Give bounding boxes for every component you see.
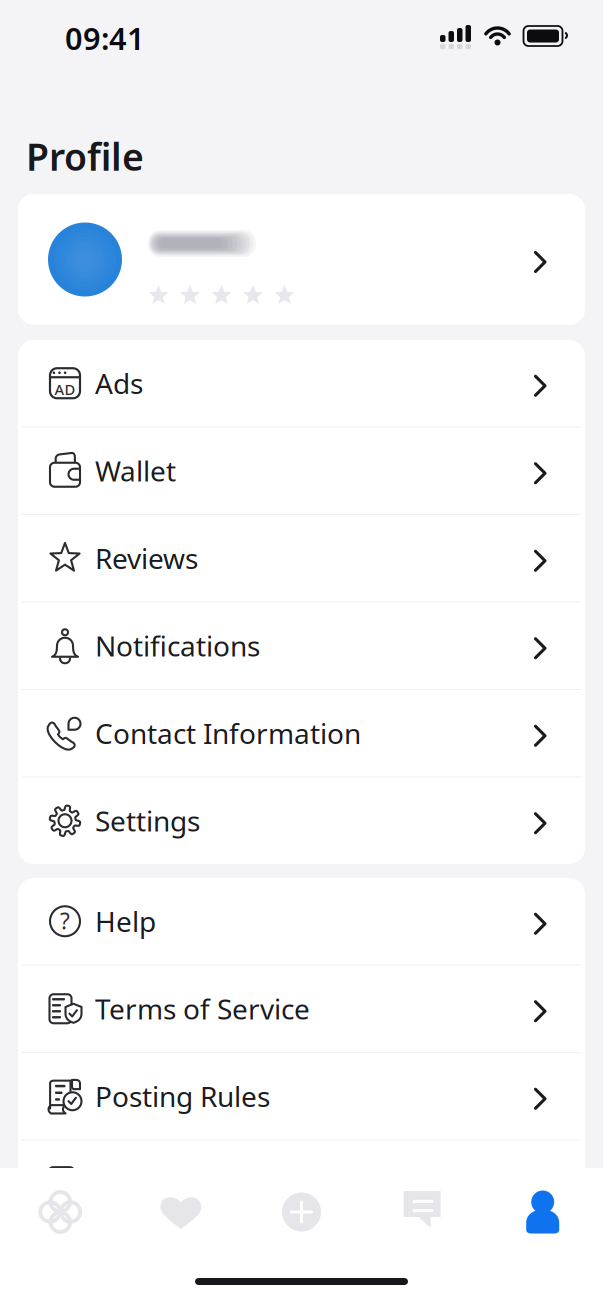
staticText: ? bbox=[60, 906, 70, 936]
staticText: Ads bbox=[95, 365, 143, 402]
button[interactable]: Posting Rules bbox=[18, 1053, 585, 1139]
button[interactable]: AD bbox=[18, 340, 585, 426]
button[interactable]: ? bbox=[18, 878, 585, 964]
staticText: Wallet bbox=[95, 452, 176, 489]
staticText: Posting Rules bbox=[95, 1078, 270, 1115]
button[interactable]: Wallet bbox=[18, 427, 585, 514]
button[interactable]: Favorites bbox=[121, 1168, 241, 1256]
button[interactable]: Privacy Policy bbox=[18, 1140, 585, 1227]
button[interactable]: Home bbox=[0, 1168, 121, 1256]
button[interactable]: Messages bbox=[362, 1168, 482, 1256]
button[interactable]: Create bbox=[241, 1168, 362, 1256]
staticText: AD bbox=[54, 379, 75, 399]
button[interactable]: Terms of Service bbox=[18, 965, 585, 1052]
button[interactable]: Settings bbox=[18, 777, 585, 864]
staticText: Settings bbox=[95, 802, 200, 839]
button[interactable] bbox=[0, 194, 603, 325]
staticText: Privacy Policy bbox=[95, 1165, 270, 1202]
button[interactable]: Profile bbox=[482, 1168, 603, 1256]
staticText: 09:41 bbox=[65, 18, 145, 58]
staticText: Profile bbox=[26, 131, 144, 181]
staticText: Help bbox=[95, 903, 156, 940]
button[interactable]: Notifications bbox=[18, 602, 585, 689]
staticText: Contact Information bbox=[95, 715, 361, 752]
button[interactable]: Contact Information bbox=[18, 690, 585, 776]
button[interactable]: Reviews bbox=[18, 515, 585, 601]
staticText: Reviews bbox=[95, 540, 198, 577]
staticText: Terms of Service bbox=[95, 990, 310, 1027]
staticText: Notifications bbox=[95, 627, 260, 664]
